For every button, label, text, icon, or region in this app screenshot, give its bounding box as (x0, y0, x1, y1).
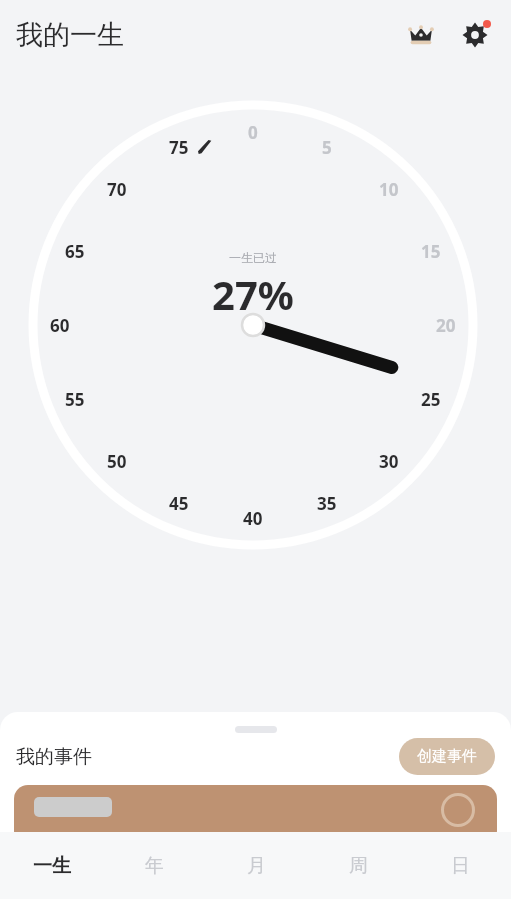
staticText: 月 (247, 854, 266, 878)
staticText: 年 (145, 854, 164, 878)
staticText: 20 (436, 314, 456, 337)
staticText: 我的一生 (16, 18, 124, 52)
staticText: 一生 (33, 854, 71, 878)
staticText: 70 (107, 178, 127, 201)
button[interactable]: 周 (307, 832, 409, 899)
staticText: 我的事件 (16, 745, 92, 769)
button[interactable]: Settings (453, 13, 497, 57)
staticText: 30 (379, 450, 399, 473)
button[interactable] (14, 785, 497, 845)
staticText: 5 (322, 136, 332, 159)
button[interactable]: 月 (205, 832, 307, 899)
staticText: 15 (421, 240, 441, 263)
staticText: 创建事件 (417, 747, 477, 766)
staticText: 27% (212, 267, 294, 321)
button[interactable]: 创建事件 (399, 738, 495, 775)
staticText: 40 (243, 507, 263, 530)
button[interactable]: Premium (399, 13, 443, 57)
staticText: 一生已过 (229, 250, 277, 265)
button[interactable]: 一生 (0, 832, 103, 899)
staticText: 10 (379, 178, 399, 201)
staticText: 25 (421, 388, 441, 411)
staticText: 50 (107, 450, 127, 473)
staticText: 75 (169, 136, 189, 159)
staticText: 日 (451, 854, 470, 878)
staticText: 65 (65, 240, 85, 263)
button[interactable]: 年 (103, 832, 205, 899)
staticText: 0 (248, 121, 258, 144)
staticText: 45 (169, 492, 189, 515)
staticText: 60 (50, 314, 70, 337)
staticText: 35 (317, 492, 337, 515)
staticText: 55 (65, 388, 85, 411)
button[interactable]: 日 (409, 832, 511, 899)
staticText: 周 (349, 854, 368, 878)
